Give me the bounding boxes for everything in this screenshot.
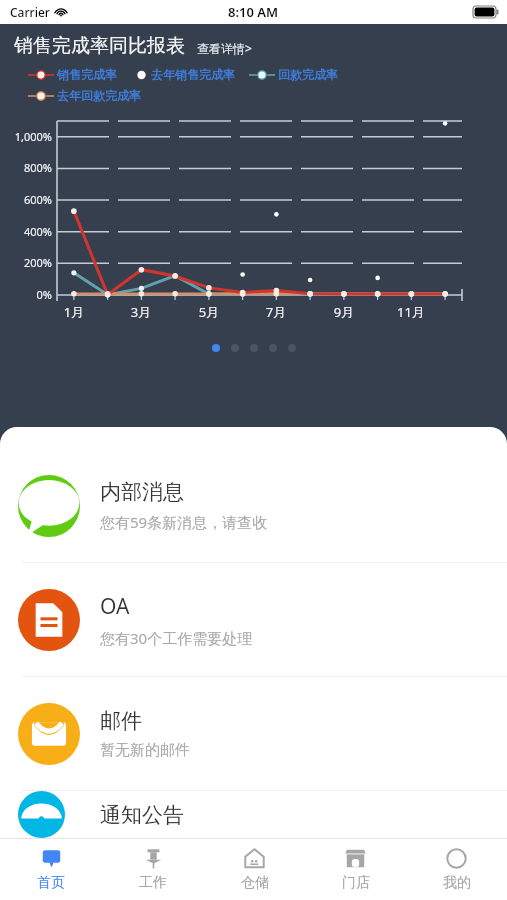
button[interactable]: 查看详情> [197, 40, 252, 58]
staticText: 11月 [393, 303, 429, 321]
staticText: 200% [0, 255, 52, 270]
staticText: 您有59条新消息，请查收 [100, 512, 268, 532]
staticText: 销售完成率同比报表 [14, 34, 185, 58]
staticText: 首页 [37, 874, 65, 892]
staticText: 1,000% [0, 129, 52, 144]
staticText: 0% [0, 287, 52, 302]
staticText: 去年销售完成率 [151, 67, 235, 82]
staticText: 我的 [443, 874, 471, 892]
staticText: 回款完成率 [278, 67, 338, 82]
staticText: 邮件 [100, 708, 142, 734]
button[interactable]: 仓储 [204, 839, 305, 900]
button[interactable]: 邮件 [0, 677, 507, 790]
staticText: 400% [0, 224, 52, 239]
staticText: 9月 [326, 303, 362, 321]
staticText: Carrier [10, 4, 50, 20]
staticText: 您有30个工作需要处理 [100, 628, 253, 648]
staticText: 销售完成率 [57, 67, 117, 82]
staticText: 3月 [123, 303, 159, 321]
button[interactable]: OA [0, 563, 507, 676]
button[interactable]: 内部消息 [0, 449, 507, 562]
button[interactable]: 门店 [305, 839, 406, 900]
staticText: 600% [0, 192, 52, 207]
staticText: 800% [0, 160, 52, 175]
staticText: 仓储 [241, 874, 269, 892]
button[interactable]: 首页 [0, 839, 102, 900]
staticText: 查看详情> [197, 40, 252, 56]
button[interactable]: 通知公告 [0, 791, 507, 838]
staticText: 5月 [191, 303, 227, 321]
staticText: 7月 [258, 303, 294, 321]
staticText: 门店 [342, 874, 370, 892]
button[interactable]: 工作 [102, 839, 204, 900]
staticText: 去年回款完成率 [57, 88, 141, 103]
staticText: OA [100, 592, 130, 621]
staticText: 通知公告 [100, 802, 184, 828]
staticText: 1月 [56, 303, 92, 321]
staticText: 工作 [139, 874, 167, 892]
staticText: 8:10 AM [228, 3, 279, 21]
staticText: 暂无新的邮件 [100, 741, 190, 760]
button[interactable]: 我的 [406, 839, 507, 900]
staticText: 内部消息 [100, 479, 184, 505]
